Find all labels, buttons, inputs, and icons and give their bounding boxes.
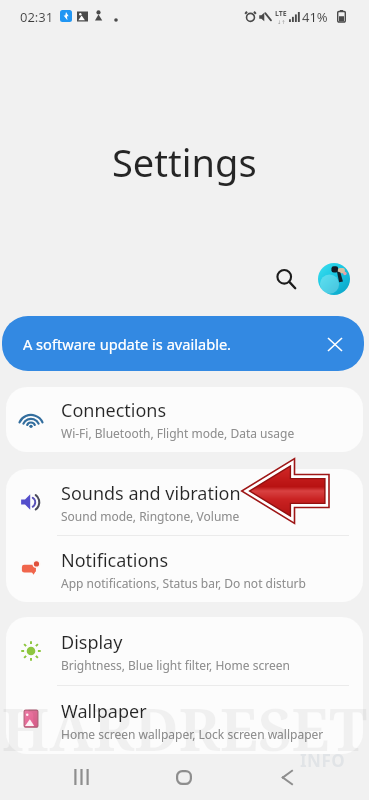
button[interactable]: Recent apps bbox=[53, 749, 109, 800]
button[interactable]: Search bbox=[266, 259, 306, 299]
button[interactable]: Display bbox=[6, 617, 363, 685]
staticText: Sound mode, Ringtone, Volume bbox=[61, 508, 240, 524]
staticText: Wallpaper bbox=[61, 699, 147, 724]
button[interactable]: A software update is available. bbox=[2, 316, 364, 371]
staticText: Display bbox=[61, 630, 123, 655]
staticText: A software update is available. bbox=[23, 334, 322, 354]
button[interactable]: Wallpaper bbox=[6, 686, 363, 754]
staticText: Connections bbox=[61, 398, 167, 423]
button[interactable]: Profile bbox=[318, 263, 350, 295]
staticText: HARDRESET bbox=[0, 689, 369, 768]
staticText: LTE bbox=[275, 9, 287, 19]
staticText: 02:31 bbox=[20, 8, 54, 26]
button[interactable]: Dismiss bbox=[322, 331, 348, 357]
staticText: Home screen wallpaper, Lock screen wallp… bbox=[61, 726, 324, 742]
staticText: 41% bbox=[302, 8, 328, 26]
staticText: Settings bbox=[112, 136, 257, 188]
button[interactable]: Notifications bbox=[6, 536, 363, 602]
staticText: ↓↑ bbox=[277, 19, 286, 25]
button[interactable]: Sounds and vibration bbox=[6, 469, 363, 535]
staticText: Sounds and vibration bbox=[61, 481, 241, 506]
staticText: Notifications bbox=[61, 548, 169, 573]
staticText: INFO bbox=[300, 749, 346, 772]
button[interactable]: Back bbox=[259, 749, 315, 800]
staticText: Wi-Fi, Bluetooth, Flight mode, Data usag… bbox=[61, 425, 295, 441]
button[interactable]: Home bbox=[156, 749, 212, 800]
button[interactable]: Connections bbox=[6, 387, 363, 452]
staticText: App notifications, Status bar, Do not di… bbox=[61, 575, 306, 591]
staticText: Brightness, Blue light filter, Home scre… bbox=[61, 657, 290, 673]
